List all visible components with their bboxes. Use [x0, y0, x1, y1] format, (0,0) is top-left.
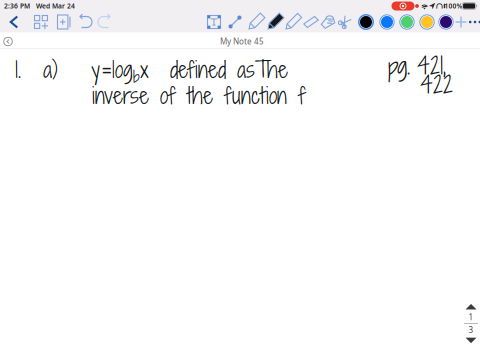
staticText: 2:36 PM	[4, 2, 30, 10]
button[interactable]: More	[465, 12, 480, 32]
button[interactable]: Back	[3, 12, 25, 32]
button[interactable]: Color	[436, 12, 456, 32]
button[interactable]: Add page	[54, 12, 74, 32]
button[interactable]: Redo	[94, 12, 114, 32]
button[interactable]: Color	[417, 12, 437, 32]
button[interactable]: Color	[356, 12, 376, 32]
button[interactable]: Previous page	[464, 302, 478, 311]
staticText: 1. a) y=log	[15, 54, 133, 85]
staticText: 3	[468, 325, 473, 335]
button[interactable]: Show sidebar	[0, 33, 16, 49]
staticText: pg.	[388, 49, 410, 82]
staticText: inverse of the function f	[92, 80, 306, 111]
staticText: Wed Mar 24	[36, 2, 75, 10]
button[interactable]: Color	[377, 12, 397, 32]
staticText: x defined asThe	[140, 54, 288, 85]
button[interactable]: Highlighter	[283, 12, 303, 32]
button[interactable]: Undo	[76, 12, 96, 32]
button[interactable]: Add colour	[451, 12, 471, 32]
staticText: 100%	[444, 2, 462, 10]
staticText: b	[133, 66, 140, 88]
staticText: 421,	[417, 49, 446, 82]
button[interactable]: Pencil	[246, 12, 266, 32]
button[interactable]: Text tool	[204, 12, 224, 32]
button[interactable]: Color	[397, 12, 417, 32]
button[interactable]: Pen	[265, 12, 285, 32]
button[interactable]: Shapes	[225, 12, 245, 32]
button[interactable]: Cut	[335, 12, 355, 32]
button[interactable]: Page thumbnails	[31, 12, 51, 32]
staticText: 1	[468, 312, 473, 322]
button[interactable]: Eraser	[301, 12, 321, 32]
button[interactable]: Lasso	[318, 12, 338, 32]
button[interactable]: Next page	[464, 336, 478, 345]
staticText: My Note 45	[220, 36, 264, 47]
staticText: 422	[420, 68, 453, 101]
